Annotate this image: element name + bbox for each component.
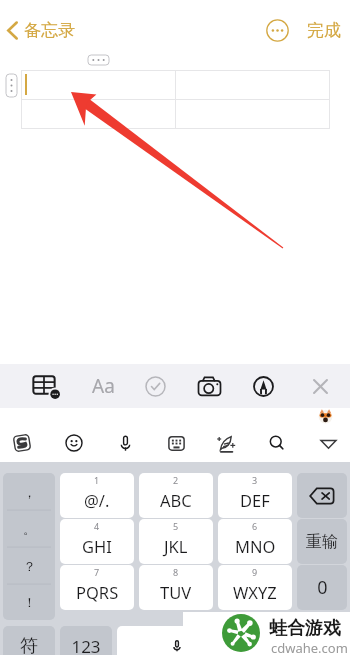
- staticText: JKL: [164, 535, 188, 557]
- staticText: 符: [20, 635, 38, 655]
- button[interactable]: Handwriting: [206, 423, 246, 463]
- staticText: cdwahe.com: [271, 639, 348, 655]
- staticText: 重输: [306, 532, 338, 552]
- button[interactable]: Hide keyboard: [308, 423, 348, 463]
- button[interactable]: 9: [218, 565, 292, 610]
- button[interactable]: 备忘录: [0, 16, 83, 45]
- button[interactable]: 123: [60, 626, 112, 655]
- staticText: 0: [317, 575, 328, 600]
- button[interactable]: Checklist: [133, 364, 177, 408]
- staticText: 备忘录: [24, 20, 75, 41]
- button[interactable]: 符: [3, 626, 55, 655]
- button[interactable]: Aa: [81, 364, 125, 408]
- button[interactable]: Sogou input: [2, 423, 42, 463]
- staticText: 3: [252, 474, 258, 486]
- button[interactable]: 7: [60, 565, 134, 610]
- staticText: 2: [173, 474, 179, 486]
- button[interactable]: 重输: [297, 519, 347, 564]
- staticText: 6: [252, 520, 258, 532]
- staticText: ABC: [160, 489, 192, 511]
- button[interactable]: Table: [23, 364, 67, 408]
- staticText: WXYZ: [233, 581, 277, 603]
- button[interactable]: 5: [139, 519, 213, 564]
- staticText: ！: [23, 594, 36, 610]
- staticText: 。: [23, 521, 36, 537]
- button[interactable]: Emoji: [54, 423, 94, 463]
- button[interactable]: Column options: [88, 55, 109, 65]
- button[interactable]: ，: [3, 473, 55, 510]
- staticText: 完成: [307, 20, 341, 41]
- staticText: 4: [94, 520, 100, 532]
- button[interactable]: Keyboard layout: [156, 423, 196, 463]
- staticText: @/.: [84, 489, 110, 511]
- staticText: TUV: [160, 581, 192, 603]
- button[interactable]: 6: [218, 519, 292, 564]
- button[interactable]: ！: [3, 584, 55, 620]
- staticText: DEF: [240, 489, 270, 511]
- staticText: PQRS: [76, 581, 119, 603]
- button[interactable]: 0: [297, 565, 347, 610]
- staticText: 7: [94, 566, 100, 578]
- button[interactable]: Voice input: [105, 423, 145, 463]
- button[interactable]: Space: [117, 626, 237, 655]
- staticText: GHI: [82, 535, 112, 557]
- button[interactable]: ？: [3, 547, 55, 584]
- button[interactable]: Search: [257, 423, 297, 463]
- staticText: 1: [94, 474, 100, 486]
- button[interactable]: Close keyboard: [298, 364, 342, 408]
- staticText: 9: [252, 566, 258, 578]
- button[interactable]: 3: [218, 473, 292, 518]
- staticText: 5: [173, 520, 179, 532]
- button[interactable]: Markup: [241, 364, 285, 408]
- button[interactable]: 完成: [304, 14, 344, 47]
- staticText: Aa: [92, 373, 115, 399]
- button[interactable]: 4: [60, 519, 134, 564]
- staticText: ，: [23, 484, 36, 500]
- staticText: MNO: [235, 535, 276, 557]
- button[interactable]: Row options: [6, 74, 17, 97]
- button[interactable]: 8: [139, 565, 213, 610]
- button[interactable]: 2: [139, 473, 213, 518]
- staticText: 蛙合游戏: [269, 617, 341, 640]
- staticText: 123: [71, 635, 101, 655]
- button[interactable]: More options: [264, 17, 291, 44]
- button[interactable]: Key: [297, 626, 347, 655]
- button[interactable]: Delete: [297, 473, 347, 518]
- button[interactable]: 。: [3, 510, 55, 547]
- staticText: 8: [173, 566, 179, 578]
- staticText: ？: [23, 558, 36, 574]
- button[interactable]: Camera: [187, 364, 231, 408]
- button[interactable]: 1: [60, 473, 134, 518]
